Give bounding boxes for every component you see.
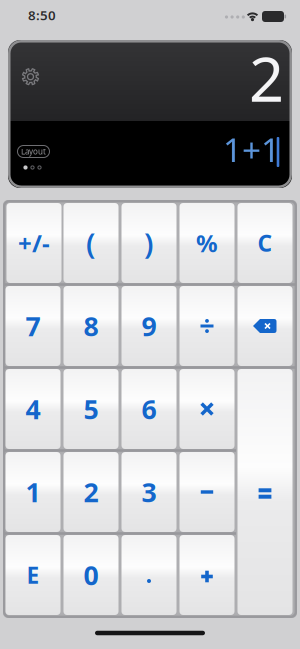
staticText: +/- (18, 227, 50, 259)
button[interactable]: ( (63, 203, 118, 283)
staticText: 0 (83, 557, 98, 593)
staticText: ( (86, 223, 96, 262)
button[interactable]: 5 (63, 369, 118, 449)
staticText: 5 (83, 391, 98, 427)
button[interactable]: 6 (121, 369, 176, 449)
staticText: 6 (141, 391, 156, 427)
staticText: 4 (25, 391, 40, 427)
staticText: 8:50 (28, 6, 56, 24)
button[interactable]: 0 (63, 535, 118, 615)
staticText: 8 (83, 308, 98, 344)
button[interactable]: 9 (121, 286, 176, 366)
staticText: % (196, 227, 218, 259)
staticText: 2 (249, 37, 284, 119)
button[interactable]: Subtract (179, 452, 234, 532)
staticText: E (26, 560, 39, 590)
button[interactable]: C (237, 203, 292, 283)
button[interactable]: Layout (16, 144, 51, 159)
button[interactable]: 4 (5, 369, 60, 449)
button[interactable]: 2 (63, 452, 118, 532)
button[interactable]: Divide (179, 286, 234, 366)
button[interactable]: Equals (237, 369, 292, 615)
button[interactable]: +/- (6, 203, 61, 283)
button[interactable]: 7 (5, 286, 60, 366)
staticText: 7 (25, 308, 40, 344)
button[interactable]: Multiply (179, 369, 234, 449)
staticText: C (257, 228, 272, 258)
button[interactable]: Add (179, 535, 234, 615)
button[interactable]: 1 (5, 452, 60, 532)
button[interactable]: Delete (237, 286, 292, 366)
staticText: 3 (141, 474, 156, 510)
button[interactable]: ) (121, 203, 176, 283)
staticText: 1+1 (223, 127, 280, 172)
staticText: 1 (25, 474, 40, 510)
button[interactable]: Settings (13, 60, 47, 94)
button[interactable]: % (179, 203, 234, 283)
staticText: ) (144, 223, 154, 262)
button[interactable]: 3 (121, 452, 176, 532)
button[interactable]: Decimal point (121, 535, 176, 615)
staticText: 9 (141, 308, 156, 344)
button[interactable]: E (5, 535, 60, 615)
staticText: 2 (83, 474, 98, 510)
staticText: Layout (21, 146, 46, 157)
button[interactable]: 8 (63, 286, 118, 366)
